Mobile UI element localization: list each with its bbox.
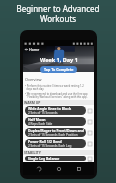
button[interactable]: Home [54, 164, 63, 173]
staticText: Beginner to Advanced Workouts [16, 3, 100, 25]
staticText: Tap To Complete [44, 67, 74, 72]
staticText: 4 Reps Each Side [28, 122, 53, 126]
staticText: Home [29, 47, 40, 52]
staticText: • Perform this routine 3 times a week re… [25, 84, 84, 90]
staticText: 2 Sets of 15 Seconds Each Leg [28, 144, 72, 148]
staticText: Single Leg Balance [28, 156, 60, 161]
staticText: Half Moon [28, 117, 46, 122]
button[interactable]: Tap To Complete [40, 66, 77, 73]
button[interactable]: Back [24, 47, 29, 52]
button[interactable]: Back [34, 164, 43, 173]
staticText: Power Roll 1/2 Bend [28, 139, 62, 144]
button[interactable]: Recent apps [74, 164, 83, 173]
staticText: 2 Sets of 15 Seconds [28, 111, 58, 115]
button[interactable]: Duplex/Roger to Front/Down and Out [25, 128, 92, 137]
staticText: • We recommend to download and use the f… [25, 92, 88, 98]
staticText: STABILITY [24, 150, 41, 155]
staticText: Wide Angle Knee to Block [28, 106, 72, 111]
button[interactable]: Single Leg Balance [25, 156, 92, 161]
staticText: Week 1, Day 1 [40, 56, 78, 63]
staticText: 2 Sets of 15 Seconds Each Position Each … [28, 133, 84, 137]
button[interactable]: Power Roll 1/2 Bend [25, 139, 92, 148]
button[interactable]: Half Moon [25, 117, 92, 126]
staticText: WARM UP [24, 100, 41, 105]
button[interactable]: Wide Angle Knee to Block [25, 106, 92, 115]
staticText: Duplex/Roger to Front/Down and Out [28, 128, 84, 133]
staticText: Overview [25, 77, 42, 82]
